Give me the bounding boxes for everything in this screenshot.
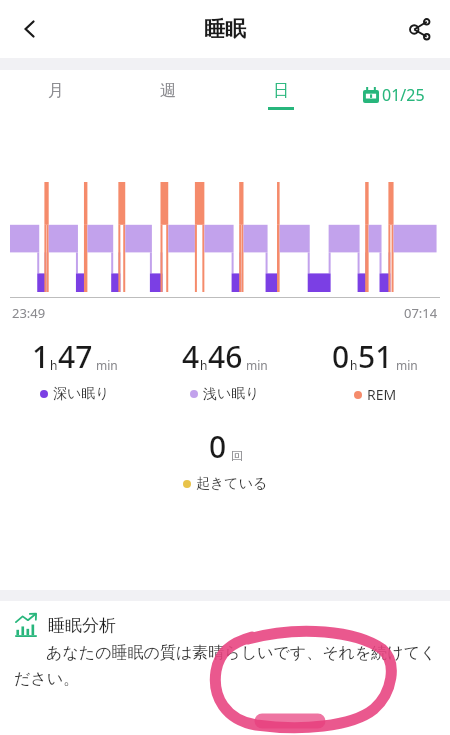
button[interactable]: 0	[300, 336, 450, 404]
staticText: 深い眠り	[53, 385, 110, 403]
staticText: 回	[231, 448, 243, 463]
staticText: 1	[32, 336, 50, 377]
staticText: 47	[58, 336, 93, 377]
staticText: REM	[367, 385, 397, 404]
staticText: 4	[182, 336, 200, 377]
staticText: 01/25	[382, 84, 425, 106]
staticText: 46	[208, 336, 243, 377]
staticText: 23:49	[12, 304, 46, 322]
staticText: h	[350, 357, 358, 373]
staticText: 07:14	[404, 304, 438, 322]
staticText: 睡眠	[204, 16, 246, 42]
staticText: min	[96, 357, 118, 373]
button[interactable]: 4	[150, 336, 300, 403]
staticText: 睡眠分析	[48, 615, 116, 636]
staticText: h	[200, 357, 208, 373]
staticText: 0	[209, 426, 227, 467]
staticText: 週	[160, 81, 176, 101]
button[interactable]: 01/25	[337, 70, 450, 120]
button[interactable]: 日	[224, 70, 337, 120]
staticText: あなたの睡眠の質は素晴らしいです、それを続けてください。	[14, 641, 438, 689]
staticText: 浅い眠り	[203, 385, 260, 403]
staticText: 起きている	[196, 475, 268, 493]
staticText: 51	[358, 336, 393, 377]
staticText: 0	[332, 336, 350, 377]
staticText: min	[246, 357, 268, 373]
staticText: min	[396, 357, 418, 373]
button[interactable]: 月	[0, 70, 112, 120]
staticText: 日	[273, 81, 289, 101]
staticText: h	[50, 357, 58, 373]
button[interactable]: Share	[398, 7, 442, 51]
button[interactable]: 週	[112, 70, 224, 120]
staticText: 月	[48, 81, 64, 101]
button[interactable]: Back	[8, 7, 52, 51]
button[interactable]: 1	[0, 336, 150, 403]
